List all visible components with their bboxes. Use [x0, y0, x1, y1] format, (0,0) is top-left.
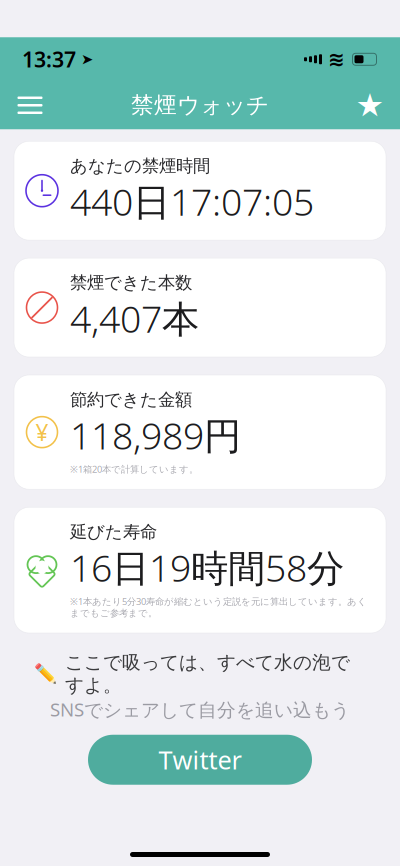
staticText: 節約できた金額 [70, 389, 192, 410]
staticText: 16日19時間58分 [70, 543, 344, 592]
staticText: ¥ [35, 417, 48, 447]
staticText: ✏️ [34, 663, 57, 685]
staticText: Twitter [158, 743, 241, 776]
button[interactable]: Twitter [88, 735, 312, 785]
staticText: 118,989円 [70, 410, 241, 460]
staticText: ★ [355, 87, 384, 123]
staticText: ここで吸っては、すべて水の泡ですよ。 [65, 651, 350, 697]
staticText: 4,407本 [70, 293, 199, 343]
staticText: 延びた寿命 [70, 521, 157, 543]
button[interactable]: Menu [8, 83, 52, 127]
staticText: 13:37 [22, 45, 76, 73]
button[interactable]: Favorite [348, 83, 392, 127]
staticText: ※1箱20本で計算しています。 [70, 463, 198, 475]
staticText: 禁煙ウォッチ [131, 91, 269, 119]
staticText: ※1本あたり5分30寿命が縮むという定説を元に算出しています。あくまでもご参考ま… [70, 595, 367, 619]
staticText: 440日17:07:05 [70, 177, 314, 226]
staticText: ≋ [328, 48, 345, 71]
staticText: あなたの禁煙時間 [70, 155, 210, 177]
staticText: 禁煙できた本数 [70, 272, 192, 293]
staticText: ➤ [81, 51, 93, 67]
staticText: SNSでシェアして自分を追い込もう [50, 697, 350, 722]
